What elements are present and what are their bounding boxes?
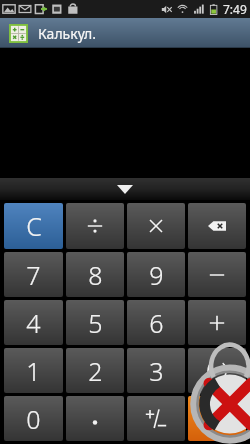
staticText: 1	[26, 354, 41, 388]
button[interactable]: Divide	[66, 203, 124, 249]
button[interactable]: 8	[66, 252, 124, 297]
staticText: 5	[88, 306, 103, 340]
button[interactable]: Decimal point	[66, 396, 124, 441]
button[interactable]: Plus	[188, 300, 246, 345]
button[interactable]: Expand history	[0, 178, 250, 200]
staticText: C	[26, 209, 42, 243]
button[interactable]: 5	[66, 300, 124, 345]
button[interactable]: 0	[4, 396, 63, 441]
button[interactable]: Multiply	[127, 203, 185, 249]
button[interactable]: 6	[127, 300, 185, 345]
button[interactable]: Sign	[127, 396, 185, 441]
button[interactable]: C	[4, 203, 63, 249]
button[interactable]: 4	[4, 300, 63, 345]
button[interactable]: Parentheses	[188, 348, 246, 393]
button[interactable]: 7	[4, 252, 63, 297]
button[interactable]: Equals	[188, 396, 246, 441]
staticText: 7:49	[223, 1, 247, 17]
button[interactable]: Backspace	[188, 203, 246, 249]
staticText: Калькул.	[38, 24, 97, 43]
staticText: 0	[26, 402, 41, 436]
button[interactable]: 2	[66, 348, 124, 393]
button[interactable]: 9	[127, 252, 185, 297]
button[interactable]: Minus	[188, 252, 246, 297]
staticText: 8	[88, 258, 103, 292]
staticText: 2	[88, 354, 103, 388]
staticText: 6	[149, 306, 164, 340]
staticText: 3	[149, 354, 164, 388]
staticText: 9	[149, 258, 164, 292]
staticText: 4	[26, 306, 41, 340]
button[interactable]: 3	[127, 348, 185, 393]
staticText: 7	[26, 258, 41, 292]
button[interactable]: 1	[4, 348, 63, 393]
